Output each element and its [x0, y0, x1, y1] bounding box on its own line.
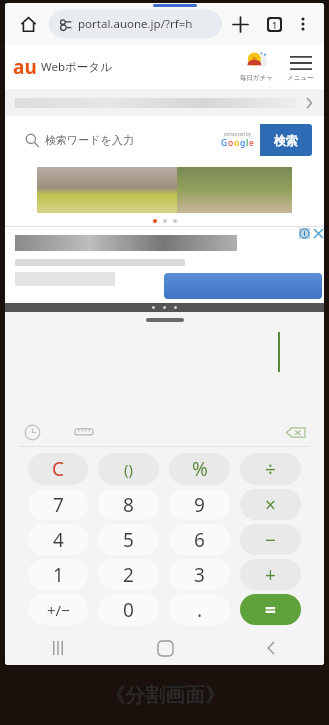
staticText: l [246, 137, 249, 149]
staticText: portal.auone.jp/?rf=h [78, 16, 193, 32]
button[interactable]: メニュー [285, 52, 316, 82]
staticText: . [197, 597, 203, 623]
button[interactable]: Tabs [260, 10, 288, 38]
button[interactable]: 3 [169, 559, 230, 590]
button[interactable]: Unit converter [71, 419, 97, 445]
staticText: +/− [47, 600, 70, 620]
button[interactable]: 7 [28, 489, 88, 520]
staticText: 4 [53, 527, 64, 553]
staticText: Webポータル [41, 59, 112, 75]
button[interactable]: × [240, 489, 301, 520]
button[interactable]: portal.auone.jp/?rf=h [49, 10, 222, 38]
staticText: × [265, 492, 276, 518]
button[interactable]: 8 [98, 489, 159, 520]
button[interactable]: Home [145, 631, 185, 665]
button[interactable]: Ad info [299, 228, 310, 239]
button[interactable]: +/− [28, 594, 88, 625]
button[interactable]: . [169, 594, 230, 625]
button[interactable]: Home [13, 9, 43, 39]
staticText: 1 [272, 19, 278, 30]
button[interactable]: 0 [98, 594, 159, 625]
button[interactable]: 毎日ガチャ [238, 52, 275, 82]
button[interactable]: 9 [169, 489, 230, 520]
staticText: G [221, 137, 228, 149]
staticText: C [52, 456, 65, 482]
button[interactable] [37, 167, 292, 213]
staticText: 0 [123, 597, 134, 623]
button[interactable]: 検索ワードを入力 [17, 124, 260, 156]
button[interactable]: More options [290, 11, 316, 37]
staticText: enhanced by [224, 131, 252, 137]
button[interactable]: Backspace [280, 418, 310, 446]
button[interactable]: Recent apps [38, 631, 78, 665]
staticText: 2 [123, 562, 134, 588]
staticText: 1 [53, 562, 64, 588]
staticText: メニュー [287, 74, 314, 82]
button[interactable]: % [169, 453, 230, 485]
button[interactable]: 検索 [260, 124, 312, 156]
button[interactable]: () [98, 453, 159, 485]
staticText: 6 [194, 527, 205, 553]
button[interactable]: 6 [169, 524, 230, 555]
staticText: () [124, 459, 134, 479]
staticText: % [192, 456, 208, 482]
button[interactable]: au [13, 54, 112, 80]
staticText: = [265, 597, 276, 623]
staticText: e [249, 137, 254, 149]
button[interactable] [5, 89, 324, 116]
button[interactable] [5, 227, 324, 299]
staticText: − [265, 527, 276, 553]
button[interactable]: + [240, 559, 301, 590]
staticText: ÷ [265, 456, 276, 482]
button[interactable]: = [240, 594, 301, 625]
button[interactable]: 1 [28, 559, 88, 590]
staticText: 5 [123, 527, 134, 553]
button[interactable]: 5 [98, 524, 159, 555]
button[interactable]: 2 [98, 559, 159, 590]
button[interactable]: New tab [226, 10, 254, 38]
staticText: 3 [194, 562, 205, 588]
staticText: 8 [123, 492, 134, 518]
staticText: g [240, 137, 246, 149]
button[interactable]: 4 [28, 524, 88, 555]
staticText: o [228, 137, 234, 149]
button[interactable]: Close ad [312, 227, 324, 239]
staticText: 7 [53, 492, 64, 518]
button[interactable]: C [28, 453, 88, 485]
staticText: au [13, 54, 37, 80]
staticText: + [265, 562, 276, 588]
staticText: o [234, 137, 240, 149]
staticText: 毎日ガチャ [240, 74, 273, 82]
staticText: 9 [194, 492, 205, 518]
staticText: 検索 [274, 133, 298, 148]
button[interactable]: History [19, 419, 45, 445]
staticText: 検索ワードを入力 [45, 133, 134, 147]
button[interactable]: − [240, 524, 301, 555]
button[interactable]: ÷ [240, 453, 301, 485]
button[interactable]: Back [251, 631, 291, 665]
button[interactable] [164, 273, 322, 299]
staticText: 《分割画面》 [105, 683, 225, 708]
